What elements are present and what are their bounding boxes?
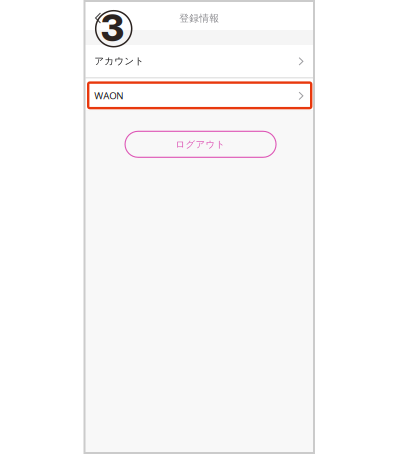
staticText: 3 [100, 5, 124, 50]
staticText: ログアウト [176, 139, 226, 150]
button[interactable]: WAON [85, 78, 313, 111]
button[interactable]: アカウント [85, 45, 313, 77]
staticText: アカウント [94, 55, 144, 67]
staticText: WAON [94, 89, 123, 102]
button[interactable]: Back [88, 6, 108, 30]
staticText: 登録情報 [179, 12, 219, 24]
button[interactable]: ログアウト [125, 131, 276, 157]
